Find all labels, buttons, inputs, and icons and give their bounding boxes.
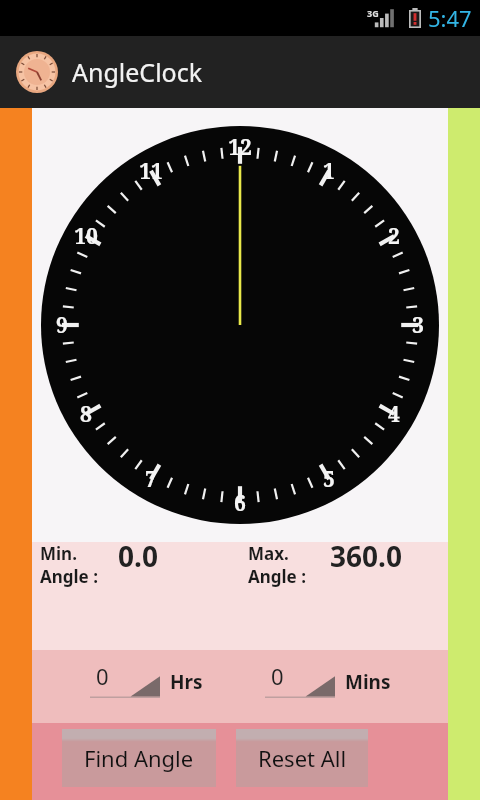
staticText: 5:47	[428, 3, 472, 33]
staticText: Angle :	[40, 565, 98, 588]
button[interactable]: 0	[265, 658, 335, 706]
staticText: 2	[388, 222, 400, 251]
staticText: 3	[412, 311, 424, 340]
staticText: Find Angle	[84, 743, 194, 773]
staticText: 0	[96, 661, 109, 691]
staticText: Max.	[248, 542, 289, 565]
staticText: 10	[74, 222, 98, 251]
staticText: 7	[145, 465, 157, 494]
staticText: 0.0	[118, 537, 158, 575]
staticText: 8	[80, 400, 92, 429]
staticText: Angle :	[248, 565, 306, 588]
staticText: 12	[228, 133, 252, 162]
staticText: 6	[234, 489, 246, 518]
staticText: Min.	[40, 542, 77, 565]
button[interactable]: Find Angle	[62, 729, 216, 787]
button[interactable]: 0	[90, 658, 160, 706]
button[interactable]: Reset All	[236, 729, 368, 787]
staticText: 3G	[367, 7, 379, 19]
staticText: 360.0	[330, 537, 402, 575]
staticText: AngleClock	[72, 55, 203, 89]
staticText: 5	[323, 465, 335, 494]
staticText: Mins	[345, 669, 391, 695]
staticText: 4	[388, 400, 400, 429]
staticText: 11	[139, 157, 163, 186]
staticText: 1	[323, 157, 335, 186]
staticText: 9	[56, 311, 68, 340]
staticText: Reset All	[258, 743, 347, 773]
staticText: 0	[271, 661, 284, 691]
staticText: Hrs	[170, 669, 203, 695]
